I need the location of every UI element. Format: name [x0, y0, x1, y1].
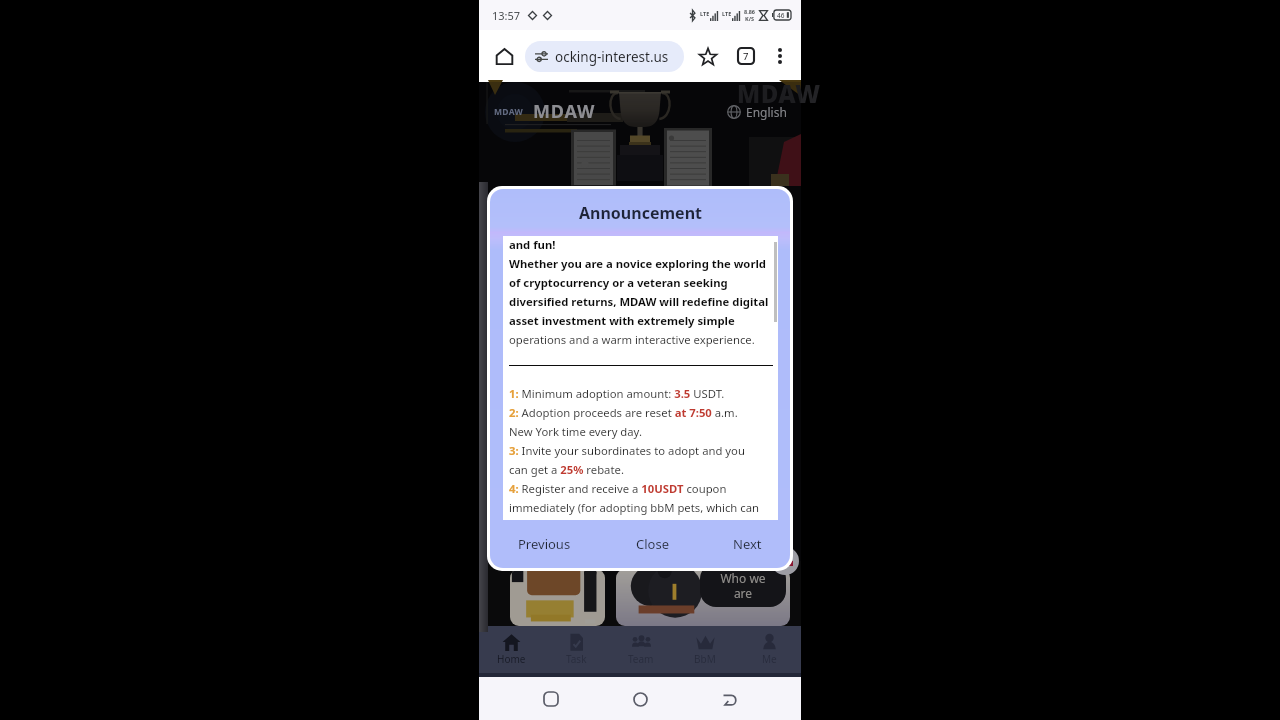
staticText: Previous	[518, 535, 571, 553]
staticText: Who we are	[720, 570, 766, 601]
staticText: 1: Minimum adoption amount: 3.5 USDT. 2:…	[509, 386, 760, 515]
button[interactable]: Who we are	[616, 569, 790, 626]
button[interactable]: Team	[609, 626, 673, 673]
button[interactable]: Recent apps	[534, 682, 568, 716]
staticText: Close	[636, 535, 669, 553]
button[interactable]: Next	[728, 530, 767, 558]
button[interactable]: Bookmark	[695, 43, 721, 69]
button[interactable]: Tabs, 7 open	[732, 42, 760, 70]
button[interactable]: ocking-interest.us	[525, 41, 684, 72]
staticText: MDAW	[494, 106, 524, 118]
button[interactable]: English	[724, 101, 790, 123]
staticText: ocking-interest.us	[555, 48, 669, 66]
staticText: Me	[762, 652, 777, 666]
staticText: Announcement	[579, 202, 702, 224]
staticText: K/S	[745, 15, 754, 22]
staticText: 8.86	[744, 8, 755, 15]
button[interactable]: More options	[767, 43, 793, 69]
staticText: Task	[566, 652, 587, 666]
button[interactable]: Who we are	[700, 569, 786, 607]
staticText: English	[746, 104, 787, 120]
staticText: BbM	[694, 652, 716, 666]
staticText: and fun! Whether you are a novice explor…	[509, 237, 769, 347]
staticText: Home	[497, 652, 526, 666]
button[interactable]: Home	[490, 42, 518, 70]
staticText: MDAW	[737, 77, 821, 110]
button[interactable]: Task	[544, 626, 609, 673]
button[interactable]: Home	[623, 682, 657, 716]
button[interactable]: Me	[737, 626, 801, 673]
staticText: 7	[743, 50, 749, 63]
staticText: LTE	[700, 10, 710, 17]
staticText: MDAW	[533, 99, 596, 124]
button[interactable]: BbM	[673, 626, 737, 673]
staticText: Next	[733, 535, 762, 553]
staticText: Team	[628, 652, 654, 666]
button[interactable]	[510, 569, 605, 626]
button[interactable]: Home	[479, 626, 544, 673]
staticText: LTE	[722, 10, 732, 17]
staticText: 13:57	[492, 8, 521, 23]
button[interactable]: Previous	[513, 530, 576, 558]
staticText: 46	[777, 11, 785, 20]
button[interactable]: Close	[631, 530, 674, 558]
button[interactable]: Back	[712, 682, 746, 716]
